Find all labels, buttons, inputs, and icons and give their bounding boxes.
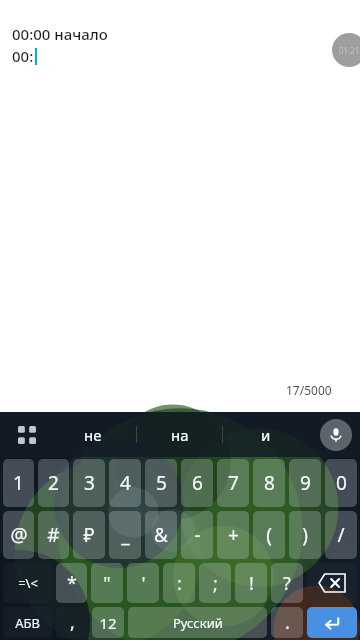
button[interactable]: Backspace [307,563,357,603]
button[interactable]: : [163,563,195,603]
staticText: ! [249,571,254,596]
staticText: / [337,522,345,548]
button[interactable]: . [271,607,303,638]
staticText: " [103,571,111,596]
staticText: ' [141,571,146,596]
button[interactable]: _ [109,511,141,559]
button[interactable]: - [181,511,213,559]
staticText: ) [302,522,308,548]
button[interactable]: 12 [92,607,124,638]
button[interactable]: ? [271,563,303,603]
button[interactable]: 7 [217,459,249,507]
button[interactable]: # [38,511,69,559]
staticText: 1 [13,470,24,496]
staticText: АБВ [15,614,40,632]
button[interactable]: ; [199,563,231,603]
button[interactable]: ) [289,511,321,559]
staticText: 00:00 начало [12,24,108,44]
staticText: 8 [264,470,275,496]
button[interactable]: 2 [38,459,69,507]
staticText: _ [121,522,130,548]
button[interactable]: * [56,563,87,603]
button[interactable]: Voice input [320,419,352,451]
staticText: =\< [18,574,38,592]
button[interactable]: и [223,412,308,457]
staticText: 6 [192,470,203,496]
staticText: : [177,571,182,596]
button[interactable]: 5 [145,459,177,507]
staticText: 01:21 [339,45,360,56]
staticText: 2 [48,470,59,496]
button[interactable]: + [217,511,249,559]
button[interactable]: & [145,511,177,559]
button[interactable]: 6 [181,459,213,507]
button[interactable]: 1 [3,459,34,507]
staticText: 00: [12,46,34,66]
button[interactable]: Keyboard menu [10,418,44,452]
button[interactable]: 9 [289,459,321,507]
staticText: и [261,425,271,445]
staticText: - [194,522,201,548]
staticText: @ [10,522,28,548]
button[interactable]: 3 [73,459,105,507]
staticText: . [285,610,290,635]
button[interactable]: ! [235,563,267,603]
button[interactable]: 8 [253,459,285,507]
button[interactable]: / [325,511,357,559]
button[interactable]: Русский [128,607,267,638]
button[interactable]: @ [3,511,34,559]
button[interactable]: 0 [325,459,357,507]
staticText: ₽ [83,522,95,548]
staticText: 12 [99,613,117,633]
staticText: ; [213,571,218,596]
staticText: & [154,522,168,548]
staticText: 4 [120,470,131,496]
staticText: 0 [336,470,347,496]
staticText: на [171,425,189,445]
button[interactable]: не [50,412,136,457]
staticText: Русский [173,614,223,632]
button[interactable]: , [56,607,88,638]
button[interactable]: ( [253,511,285,559]
button[interactable]: " [91,563,123,603]
button[interactable]: Enter [307,607,357,638]
button[interactable]: 4 [109,459,141,507]
button[interactable]: ' [127,563,159,603]
staticText: * [67,571,77,596]
staticText: 9 [300,470,311,496]
staticText: 5 [156,470,167,496]
staticText: ? [283,571,291,596]
button[interactable]: АБВ [3,607,52,638]
staticText: 17/5000 [286,382,332,398]
button[interactable]: ₽ [73,511,105,559]
button[interactable]: =\< [3,563,52,603]
button[interactable]: на [137,412,222,457]
staticText: ( [266,522,272,548]
staticText: , [70,610,75,635]
staticText: 3 [84,470,95,496]
staticText: 7 [228,470,239,496]
staticText: не [84,425,102,445]
staticText: + [228,522,239,548]
staticText: # [47,522,60,548]
